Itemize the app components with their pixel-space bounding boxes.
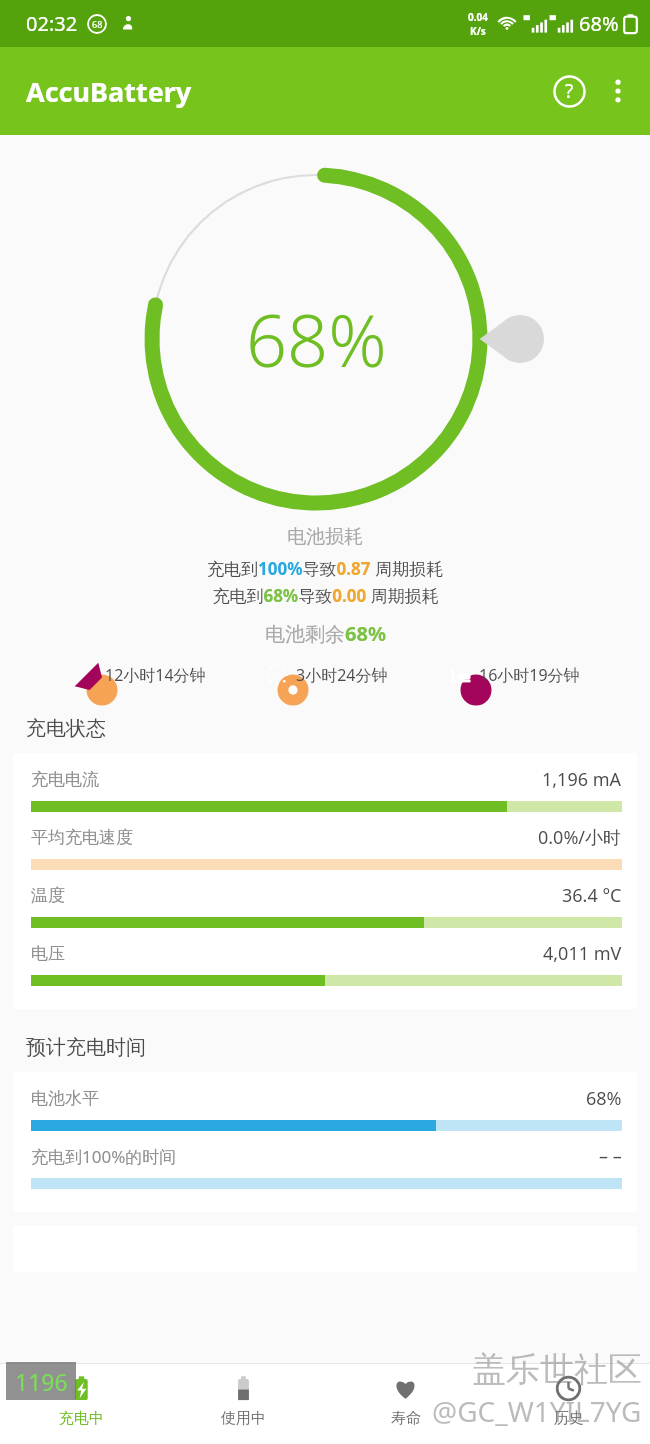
staticText: 68% (246, 290, 387, 388)
staticText: 寿命 (391, 1409, 421, 1428)
staticText: 使用中 (221, 1409, 266, 1428)
staticText: 02:32 (26, 10, 78, 37)
staticText: 历史 (554, 1409, 584, 1428)
staticText: @GC_W1YIL7YG (432, 1392, 642, 1430)
staticText: 4,011 mV (543, 941, 622, 966)
staticText: – – (599, 1144, 622, 1169)
staticText: 12小时14分钟 (105, 664, 206, 686)
staticText: 充电电流 (31, 769, 99, 790)
staticText: 0.04 (468, 10, 488, 24)
staticText: 68 (92, 18, 103, 30)
staticText: 温度 (31, 885, 65, 906)
staticText: 1,196 mA (542, 767, 622, 792)
staticText: 0.0%/小时 (538, 825, 622, 850)
staticText: 1196 (15, 1366, 68, 1397)
button[interactable]: Help (544, 66, 594, 116)
staticText: AccuBattery (26, 73, 192, 110)
staticText: 充电到100%导致0.87 周期损耗 (207, 557, 443, 580)
staticText: ? (565, 78, 574, 104)
staticText: 电压 (31, 943, 65, 964)
staticText: 16小时19分钟 (479, 664, 580, 686)
staticText: 充电状态 (26, 716, 106, 741)
button[interactable]: Discharging (162, 1364, 324, 1444)
staticText: 电池水平 (31, 1088, 99, 1109)
staticText: 68% (586, 1086, 622, 1111)
staticText: 电池损耗 (287, 525, 363, 549)
button[interactable]: More options (594, 67, 642, 115)
button[interactable]: Health (324, 1364, 487, 1444)
staticText: 充电到100%的时间 (31, 1145, 177, 1168)
staticText: 68% (579, 10, 619, 37)
staticText: 预计充电时间 (26, 1035, 146, 1060)
button[interactable]: History (487, 1364, 650, 1444)
staticText: 充电到68%导致0.00 周期损耗 (212, 584, 439, 607)
button[interactable]: Charging (0, 1364, 162, 1444)
staticText: 充电中 (59, 1409, 104, 1428)
staticText: 3小时24分钟 (296, 664, 388, 686)
staticText: 电池剩余68% (265, 620, 386, 647)
staticText: 盖乐世社区 (472, 1348, 642, 1391)
staticText: 平均充电速度 (31, 827, 133, 848)
staticText: 36.4 °C (562, 883, 622, 908)
staticText: K/s (470, 24, 486, 38)
